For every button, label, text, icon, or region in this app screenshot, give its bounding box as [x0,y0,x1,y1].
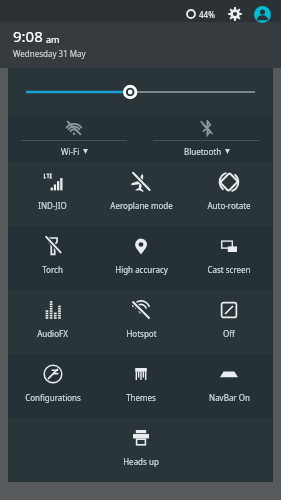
button[interactable]: Torch [8,226,97,290]
button[interactable]: NavBar On [185,354,273,418]
button[interactable]: AudioFX [8,290,97,354]
button[interactable]: Aeroplane mode [97,162,185,226]
button[interactable]: Hotspot [97,290,185,354]
staticText: Wednesday 31 May [13,48,86,59]
staticText: 44% [199,9,215,20]
staticText: 9:08 [13,26,43,46]
staticText: Configurations [25,392,81,403]
button[interactable]: Configurations [8,354,97,418]
staticText: am [46,33,60,45]
button[interactable]: High accuracy [97,226,185,290]
button[interactable]: Wi-Fi [8,115,140,162]
button[interactable]: Off [185,290,273,354]
staticText: NavBar On [209,392,250,403]
button[interactable]: Brightness [26,83,255,101]
staticText: Torch [42,264,63,275]
staticText: Auto-rotate [207,200,251,211]
staticText: Off [223,328,235,339]
staticText: Themes [126,392,156,403]
staticText: IND-JIO [38,200,67,211]
staticText: Cast screen [207,264,251,275]
button[interactable]: Auto-rotate [185,162,273,226]
staticText: AudioFX [37,328,68,339]
button[interactable]: Heads up [97,418,185,482]
button[interactable]: Bluetooth [140,115,273,162]
staticText: Heads up [123,456,159,467]
staticText: Wi-Fi [61,146,80,157]
staticText: Bluetooth [184,146,222,157]
button[interactable]: Cast screen [185,226,273,290]
button[interactable]: User profile [252,4,272,24]
button[interactable]: Settings [225,4,245,24]
button[interactable]: IND-JIO [8,162,97,226]
staticText: High accuracy [115,264,168,275]
staticText: Hotspot [126,328,157,339]
staticText: Aeroplane mode [110,200,173,211]
button[interactable]: Themes [97,354,185,418]
